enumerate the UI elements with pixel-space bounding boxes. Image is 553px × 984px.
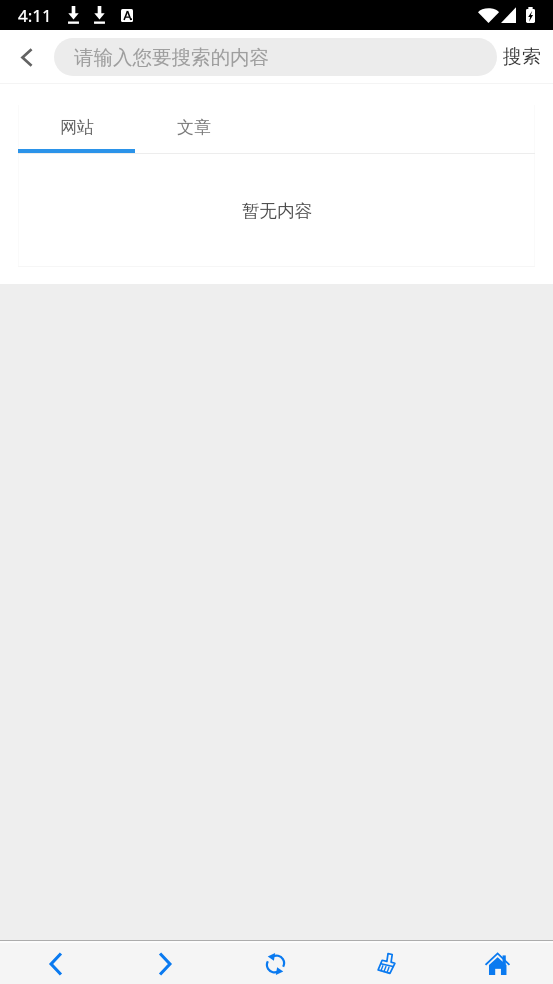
staticText: 暂无内容	[242, 200, 312, 222]
button[interactable]: Refresh	[220, 943, 331, 984]
staticText: 搜索	[503, 45, 541, 69]
button[interactable]: 文章	[135, 105, 252, 153]
staticText: 4:11	[18, 4, 52, 27]
button[interactable]: Forward	[110, 943, 220, 984]
button[interactable]: Clean	[331, 943, 442, 984]
staticText: 文章	[177, 117, 211, 138]
button[interactable]: Back	[0, 30, 54, 84]
staticText: 网站	[60, 117, 94, 138]
staticText: 请输入您要搜索的内容	[74, 45, 269, 70]
button[interactable]: 搜索	[497, 30, 553, 84]
button[interactable]: 请输入您要搜索的内容	[54, 38, 497, 76]
button[interactable]: Home	[442, 943, 553, 984]
button[interactable]: 网站	[18, 105, 135, 153]
button[interactable]: Back	[0, 943, 110, 984]
